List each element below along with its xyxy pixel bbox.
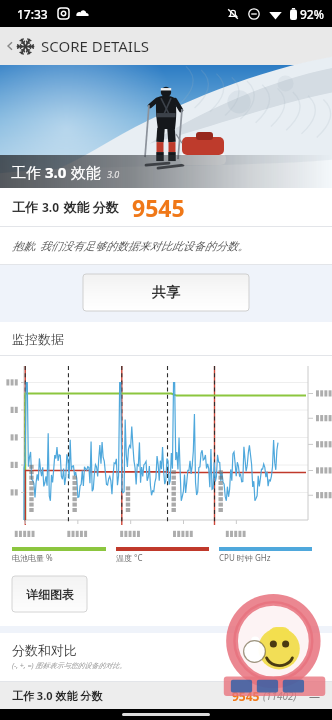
button[interactable]: Back — [0, 36, 158, 56]
staticText: 17:33 — [17, 6, 48, 22]
staticText: 3.0 — [107, 168, 120, 180]
staticText: 3.0 — [45, 162, 67, 182]
staticText: 电池电量 % — [12, 552, 53, 563]
button[interactable]: 工作 3.0 效能 分数 — [0, 682, 332, 709]
staticText: 9545 — [132, 192, 185, 223]
staticText: 3.0 — [42, 199, 60, 215]
button[interactable]: 详细图表 — [12, 576, 87, 612]
staticText: 工作 — [11, 162, 45, 182]
staticText: (-, +, =) 图标表示与您的设备的对比。 — [12, 661, 127, 671]
staticText: 效能 分数 — [60, 198, 119, 216]
staticText: 抱歉, 我们没有足够的数据来对比此设备的分数。 — [12, 238, 249, 253]
staticText: 监控数据 — [12, 331, 64, 347]
staticText: 工作 — [12, 198, 42, 216]
staticText: 效能 — [67, 162, 101, 182]
staticText: 9545 — [232, 688, 260, 704]
staticText: SCORE DETAILS — [41, 36, 150, 56]
staticText: 详细图表 — [26, 587, 74, 602]
staticText: 工作 3.0 效能 分数 — [12, 688, 103, 703]
button[interactable]: 共享 — [83, 274, 249, 311]
staticText: 温度 °C — [116, 552, 143, 563]
staticText: 92% — [300, 6, 324, 22]
staticText: — — [309, 688, 320, 703]
staticText: CPU 时钟 GHz — [219, 552, 271, 563]
staticText: 分数和对比 — [12, 642, 77, 658]
staticText: (11402) — [263, 689, 297, 703]
staticText: 共享 — [152, 284, 180, 302]
